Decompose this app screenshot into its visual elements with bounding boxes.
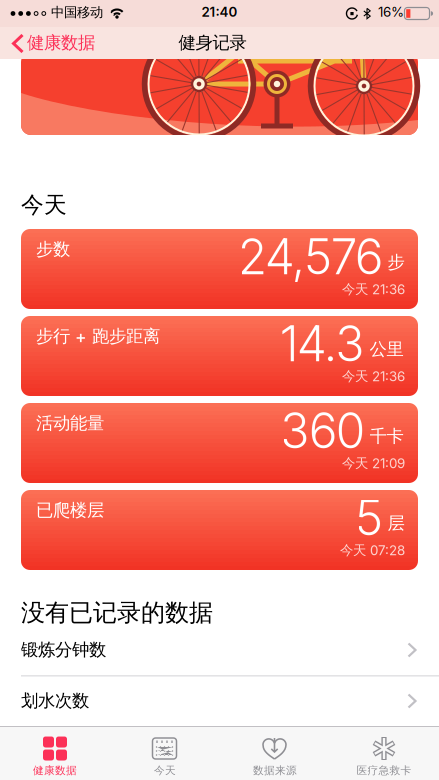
staticText: 21:40 (201, 4, 237, 20)
staticText: 今天 (154, 764, 176, 777)
staticText: 步 (387, 251, 404, 273)
staticText: 14.3 (280, 315, 364, 373)
staticText: 今天 (21, 191, 67, 219)
staticText: 5 (355, 489, 382, 547)
staticText: 今天 21:36 (342, 281, 405, 297)
staticText: 中国移动 (51, 4, 103, 20)
staticText: 步行 + 跑步距离 (36, 325, 160, 347)
staticText: 公里 (369, 338, 403, 360)
staticText: 医疗急救卡 (356, 764, 411, 777)
staticText: 千卡 (369, 425, 403, 447)
staticText: 今天 21:09 (342, 455, 405, 471)
staticText: 24,576 (238, 228, 382, 286)
staticText: 步数 (36, 238, 70, 260)
staticText: 没有已记录的数据 (21, 598, 213, 627)
staticText: 层 (387, 512, 404, 534)
staticText: 锻炼分钟数 (21, 639, 106, 660)
staticText: 今天 21:36 (342, 368, 405, 384)
staticText: 健康数据 (33, 764, 77, 777)
staticText: 今天 07:28 (340, 542, 405, 558)
staticText: 数据来源 (253, 764, 297, 777)
staticText: 划水次数 (21, 690, 89, 711)
staticText: 已爬楼层 (36, 499, 104, 521)
staticText: 活动能量 (36, 412, 104, 434)
staticText: 健康数据 (27, 32, 95, 53)
staticText: 健身记录 (178, 32, 246, 53)
staticText: 360 (280, 402, 364, 460)
staticText: 16% (378, 4, 404, 20)
